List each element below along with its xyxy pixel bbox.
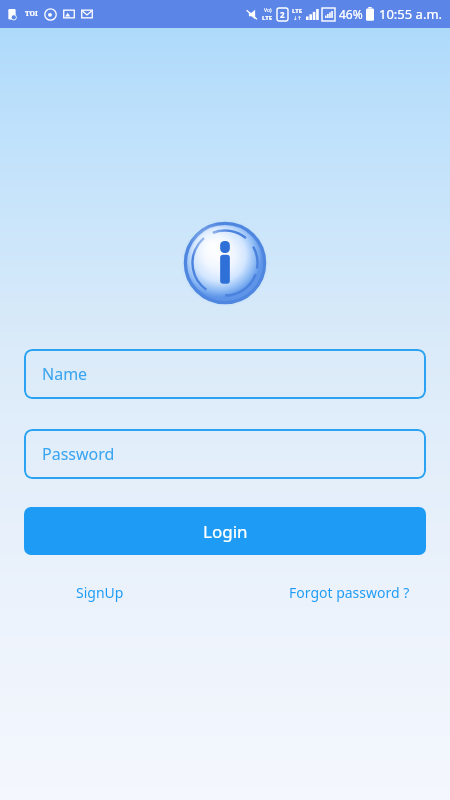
button[interactable]: Login xyxy=(24,507,426,555)
staticText: Password xyxy=(42,443,115,465)
button[interactable]: Name xyxy=(24,349,426,399)
staticText: SignUp xyxy=(76,583,124,602)
staticText: ↓↑ xyxy=(293,15,302,21)
staticText: Vo) xyxy=(264,7,272,14)
staticText: Login xyxy=(203,520,248,543)
staticText: 46% xyxy=(339,6,363,22)
button[interactable]: Forgot password ? xyxy=(285,577,414,608)
button[interactable]: SignUp xyxy=(72,577,128,608)
staticText: LTE xyxy=(262,14,273,22)
staticText: Forgot password ? xyxy=(289,583,410,602)
staticText: TOI xyxy=(25,9,38,19)
staticText: 10:55 a.m. xyxy=(379,5,443,23)
staticText: Name xyxy=(42,363,88,385)
staticText: 2 xyxy=(280,9,285,20)
other: App logo xyxy=(181,219,269,307)
button[interactable]: Password xyxy=(24,429,426,479)
staticText: LTE xyxy=(292,7,303,15)
